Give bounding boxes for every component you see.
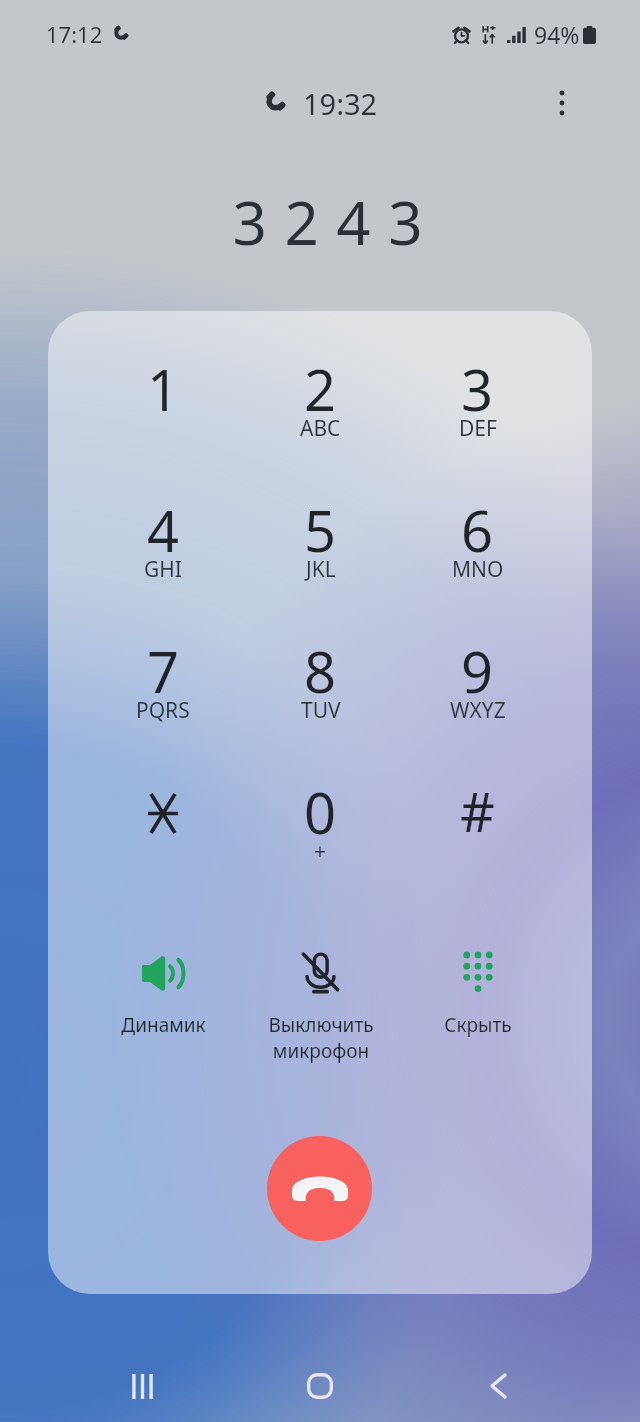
button[interactable]: 9 bbox=[399, 640, 556, 750]
staticText: Динамик bbox=[121, 1012, 206, 1038]
button[interactable]: 3 bbox=[399, 358, 556, 468]
button[interactable]: 8 bbox=[242, 640, 399, 750]
staticText: 94% bbox=[534, 19, 580, 50]
staticText: MNO bbox=[452, 555, 504, 584]
staticText: 2 bbox=[304, 351, 337, 427]
staticText: Выключить микрофон bbox=[268, 1012, 374, 1064]
button[interactable]: Скрыть bbox=[399, 951, 556, 1038]
staticText: 3 bbox=[461, 351, 494, 427]
button[interactable]: 1 bbox=[84, 358, 242, 468]
button[interactable]: Back bbox=[409, 1351, 587, 1421]
button[interactable]: Home bbox=[231, 1351, 409, 1421]
staticText: DEF bbox=[459, 414, 497, 443]
staticText: 8 bbox=[304, 633, 337, 709]
staticText: + bbox=[314, 837, 327, 866]
staticText: 9 bbox=[461, 633, 494, 709]
button[interactable]: 0 bbox=[242, 781, 399, 891]
button[interactable]: End call bbox=[267, 1136, 372, 1241]
staticText: 17:12 bbox=[46, 19, 103, 49]
staticText: ABC bbox=[300, 414, 341, 443]
staticText: 5 bbox=[304, 492, 337, 568]
staticText: 1 bbox=[147, 351, 180, 427]
staticText: WXYZ bbox=[450, 696, 506, 725]
staticText: 6 bbox=[461, 492, 494, 568]
button[interactable]: # bbox=[399, 781, 556, 891]
staticText: GHI bbox=[144, 555, 182, 584]
button[interactable]: 5 bbox=[242, 499, 399, 609]
staticText: 0 bbox=[304, 774, 337, 850]
button[interactable] bbox=[84, 781, 242, 891]
button[interactable]: Recent apps bbox=[53, 1351, 231, 1421]
button[interactable]: Выключить микрофон bbox=[242, 951, 399, 1064]
button[interactable]: 2 bbox=[242, 358, 399, 468]
staticText: 19:32 bbox=[303, 84, 378, 123]
staticText: # bbox=[460, 774, 495, 848]
button[interactable]: Динамик bbox=[84, 951, 242, 1038]
staticText: PQRS bbox=[136, 696, 190, 725]
button[interactable]: 4 bbox=[84, 499, 242, 609]
staticText: 4 bbox=[147, 492, 180, 568]
staticText: JKL bbox=[306, 555, 336, 584]
staticText: 7 bbox=[147, 633, 180, 709]
staticText: 3 2 4 3 bbox=[232, 181, 424, 263]
button[interactable]: 6 bbox=[399, 499, 556, 609]
staticText: TUV bbox=[301, 696, 341, 725]
staticText: Скрыть bbox=[444, 1012, 512, 1038]
button[interactable]: More options bbox=[538, 79, 586, 127]
button[interactable]: 7 bbox=[84, 640, 242, 750]
